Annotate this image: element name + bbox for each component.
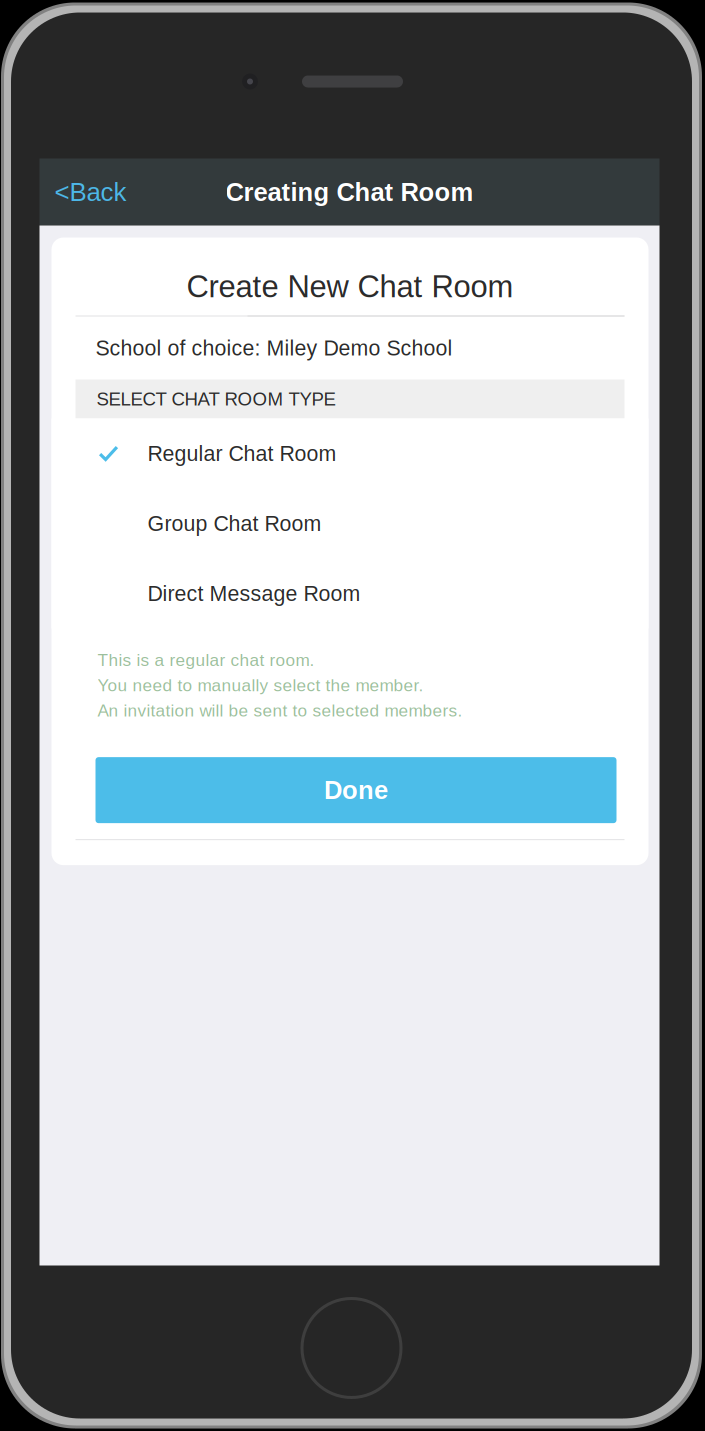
button[interactable]: Done: [95, 757, 616, 823]
staticText: You need to manually select the member.: [97, 676, 423, 695]
staticText: Create New Chat Room: [186, 269, 513, 304]
staticText: Direct Message Room: [147, 582, 360, 605]
button[interactable]: Direct Message Room: [51, 558, 648, 628]
staticText: Group Chat Room: [147, 512, 321, 535]
button[interactable]: Regular Chat Room: [51, 418, 648, 488]
button[interactable]: Group Chat Room: [51, 488, 648, 558]
staticText: Done: [324, 776, 388, 804]
staticText: SELECT CHAT ROOM TYPE: [96, 389, 335, 409]
staticText: Regular Chat Room: [147, 442, 336, 465]
staticText: Creating Chat Room: [225, 178, 473, 206]
staticText: An invitation will be sent to selected m…: [97, 701, 462, 720]
staticText: School of choice: Miley Demo School: [95, 336, 452, 360]
button[interactable]: <Back: [39, 158, 140, 225]
staticText: <Back: [54, 178, 126, 206]
staticText: This is a regular chat room.: [97, 650, 314, 670]
